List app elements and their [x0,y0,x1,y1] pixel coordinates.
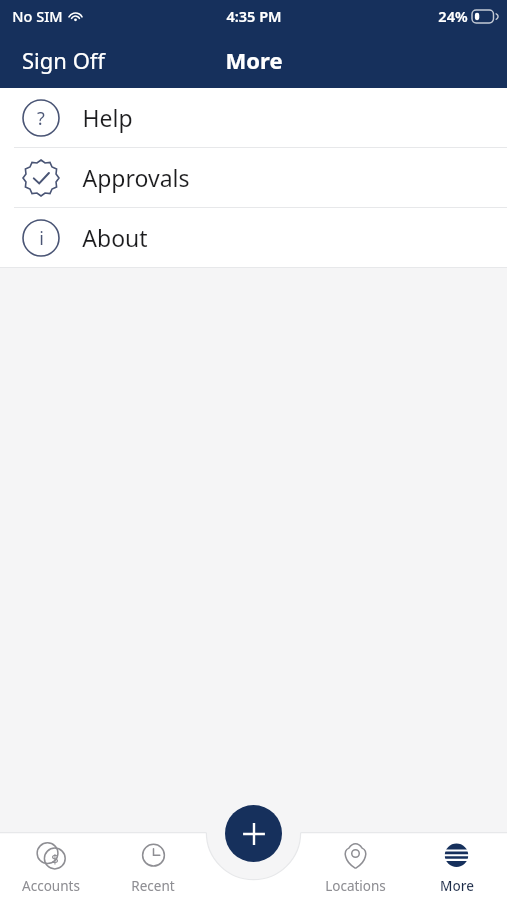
button[interactable]: Recent [102,832,204,900]
staticText: Recent [131,877,175,895]
button[interactable]: Sign Off [0,35,127,85]
staticText: Approvals [82,162,190,193]
staticText: Sign Off [22,45,105,75]
staticText: Locations [325,877,386,895]
staticText: $ [51,850,59,868]
staticText: 4:35 PM [226,6,282,26]
staticText: More [440,877,474,895]
staticText: Accounts [22,877,80,895]
button[interactable]: Locations [305,832,406,900]
button[interactable]: $ [0,832,102,900]
staticText: i [39,226,44,251]
staticText: More [225,45,283,75]
button[interactable]: Add [225,805,282,862]
button[interactable]: i [0,208,507,267]
button[interactable]: ? [0,88,507,147]
staticText: Help [82,102,133,133]
staticText: ? [37,106,45,131]
button[interactable]: Approvals [0,148,507,207]
staticText: About [82,222,148,253]
staticText: No SIM [12,6,63,26]
button[interactable]: More [406,832,507,900]
staticText: 24% [438,6,468,26]
